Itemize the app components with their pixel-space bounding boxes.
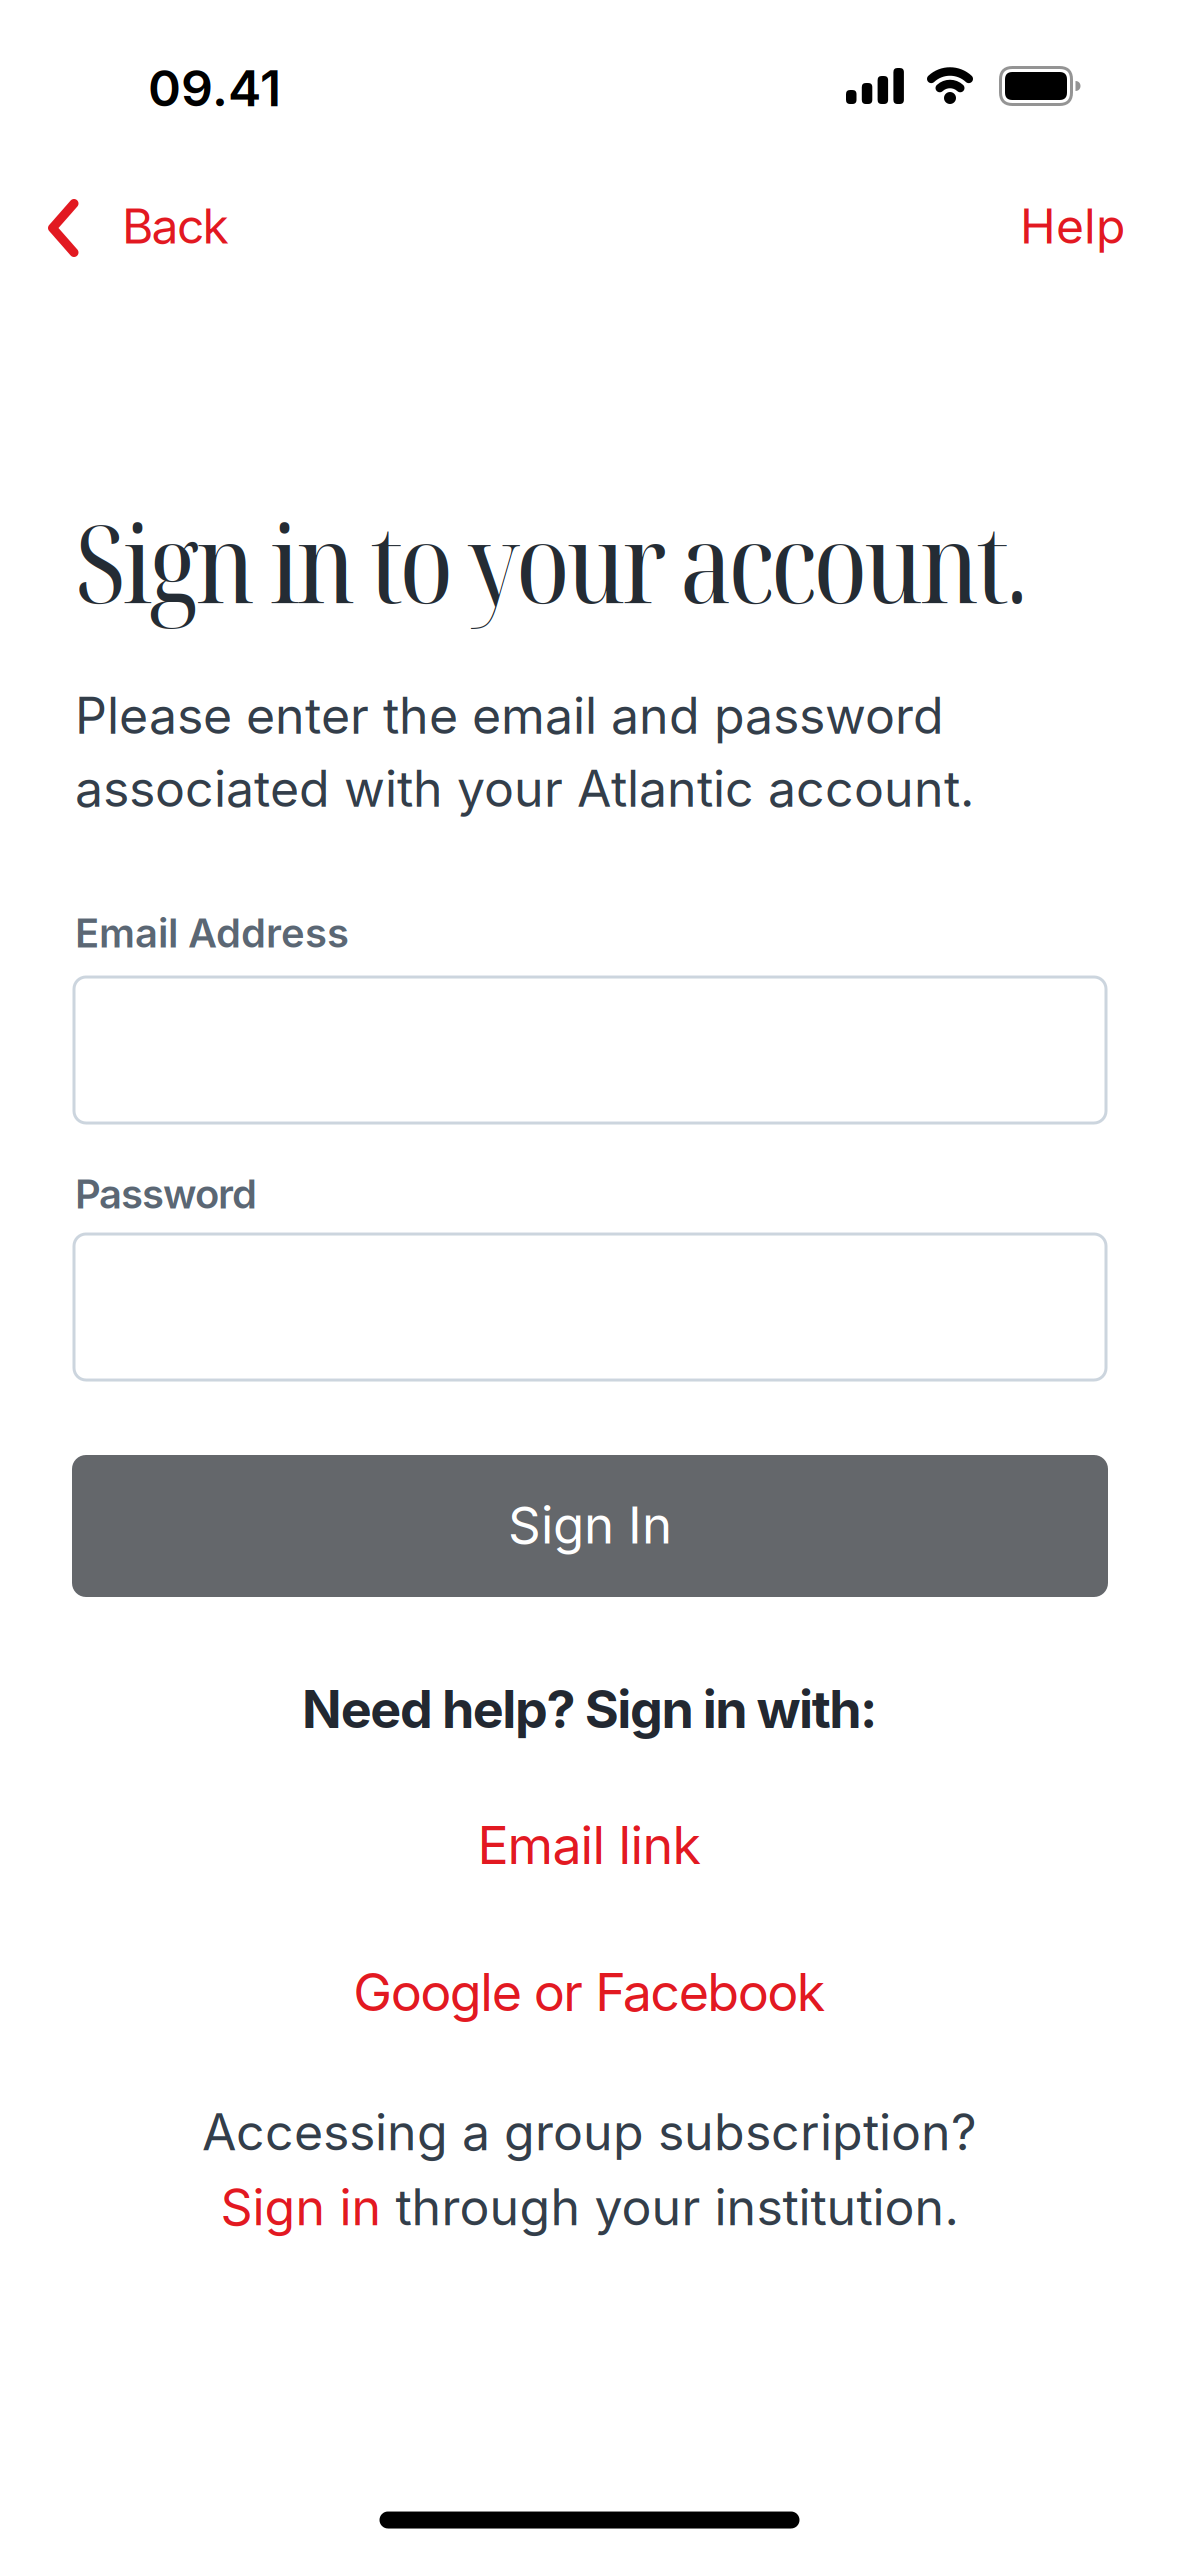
staticText: Please enter the email and password asso… [75,685,974,819]
staticText: Password [75,1170,257,1218]
staticText: 09.41 [148,58,281,118]
staticText: Sign In [508,1494,672,1556]
staticText: Google or Facebook [353,1960,826,2023]
staticText: Back [122,197,228,255]
staticText: Help [1020,197,1125,255]
staticText: Sign in to your account. [75,487,1029,635]
staticText: Email link [477,1813,701,1876]
staticText: Need help? Sign in with: [302,1677,877,1740]
staticText: Accessing a group subscription? [202,2102,977,2162]
staticText: through your institution. [381,2177,958,2237]
staticText: Sign in [220,2177,381,2237]
staticText: Email Address [75,909,349,957]
